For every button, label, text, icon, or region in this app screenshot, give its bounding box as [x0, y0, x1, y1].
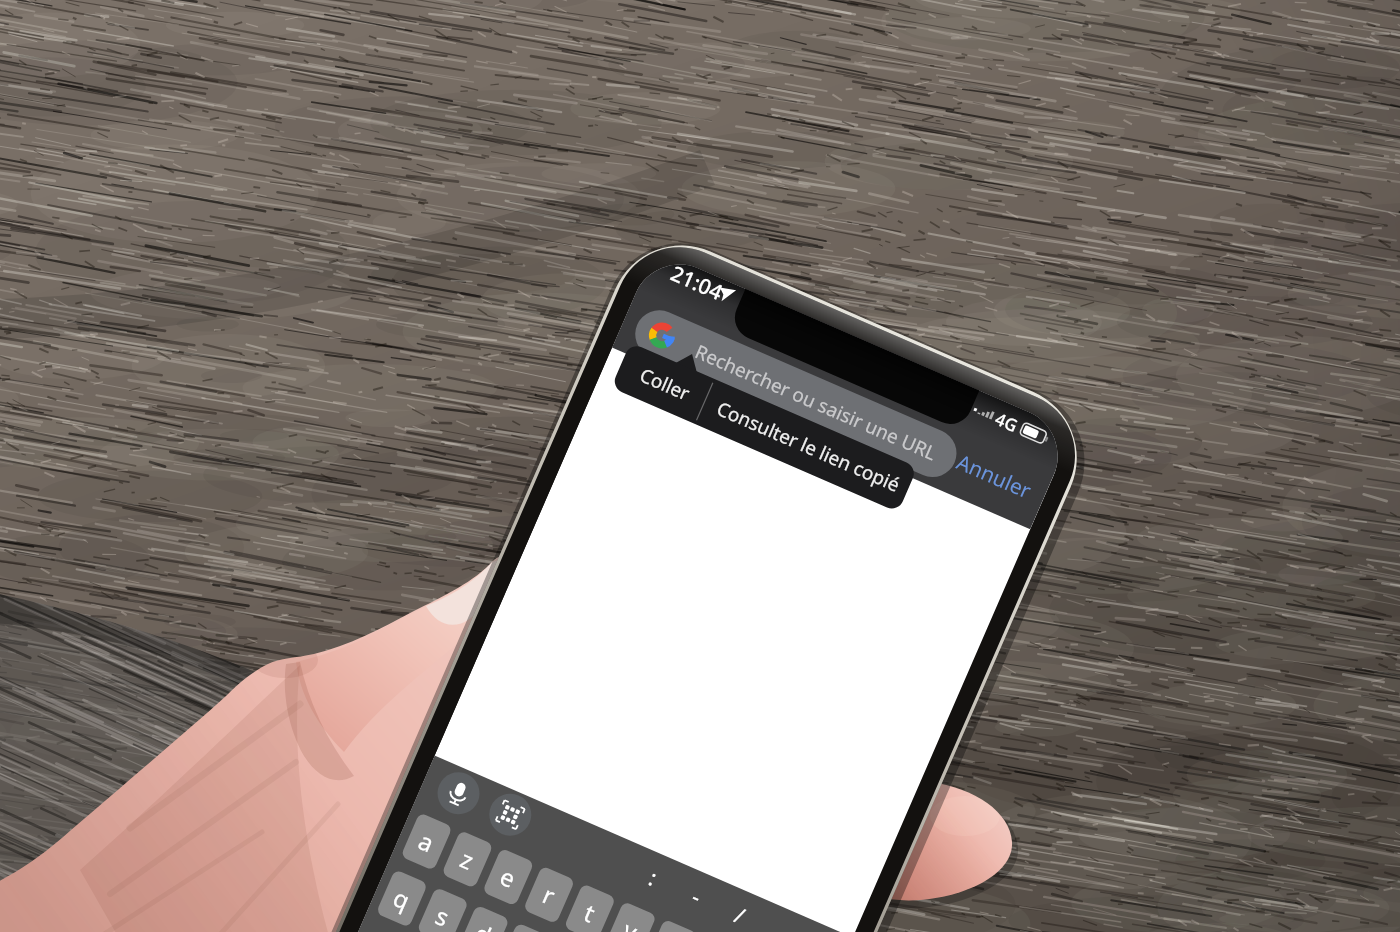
button[interactable]: Coller — [611, 342, 714, 424]
button[interactable]: Touche a — [394, 828, 446, 890]
button[interactable]: Annuler — [963, 450, 1027, 505]
button[interactable]: Rechercher ou saisir une URL — [628, 303, 964, 485]
button[interactable]: Touche z — [436, 846, 488, 908]
button[interactable]: Dictée vocale — [431, 766, 486, 821]
button[interactable]: Changer de clavier — [483, 787, 538, 842]
button[interactable]: Touche q — [370, 884, 422, 932]
button[interactable]: Touche r — [522, 884, 574, 932]
button[interactable]: Consulter le lien copié — [694, 379, 918, 512]
button[interactable]: Touche s — [413, 903, 465, 932]
button[interactable]: Touche e — [479, 865, 531, 927]
